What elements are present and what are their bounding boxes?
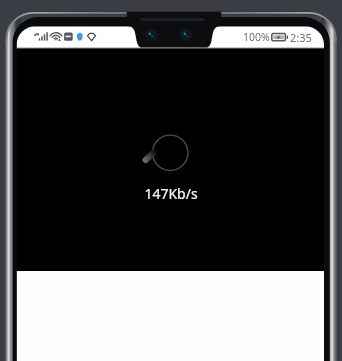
- staticText: 2:35: [290, 30, 312, 44]
- staticText: 147Kb/s: [144, 184, 198, 203]
- staticText: 100%: [243, 30, 270, 44]
